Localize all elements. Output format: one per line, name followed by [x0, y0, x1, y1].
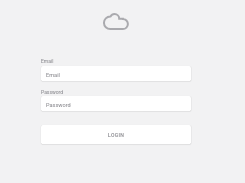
other: Cloud [103, 13, 130, 31]
button[interactable]: Password [41, 96, 191, 111]
staticText: Password [46, 102, 71, 109]
staticText: LOGIN [108, 132, 125, 138]
button[interactable]: Email [41, 66, 191, 81]
staticText: Email [41, 58, 54, 64]
staticText: Email [46, 72, 60, 79]
button[interactable]: LOGIN [41, 125, 191, 144]
staticText: Password [41, 89, 64, 95]
